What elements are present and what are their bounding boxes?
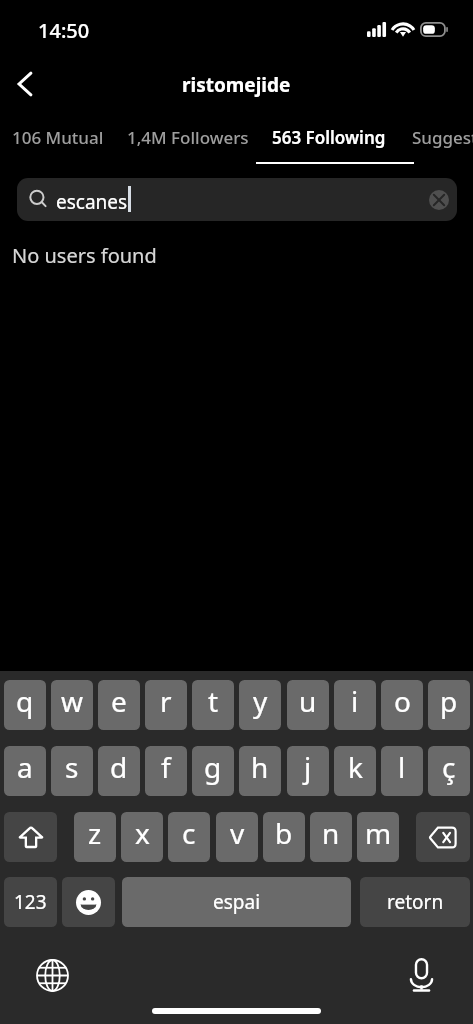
button[interactable]: k bbox=[334, 746, 376, 796]
button[interactable]: l bbox=[381, 746, 423, 796]
button[interactable]: Emoji bbox=[62, 877, 115, 927]
staticText: i bbox=[351, 682, 359, 720]
button[interactable]: m bbox=[357, 812, 399, 862]
staticText: r bbox=[160, 682, 172, 720]
button[interactable]: Return bbox=[360, 877, 470, 927]
staticText: n bbox=[322, 814, 340, 852]
button[interactable]: q bbox=[4, 680, 46, 730]
staticText: b bbox=[275, 814, 293, 852]
button[interactable]: x bbox=[121, 812, 163, 862]
button[interactable]: i bbox=[334, 680, 376, 730]
staticText: y bbox=[253, 682, 268, 720]
staticText: q bbox=[16, 682, 34, 720]
staticText: h bbox=[251, 748, 269, 786]
staticText: e bbox=[111, 682, 127, 720]
staticText: f bbox=[161, 748, 171, 786]
button[interactable]: a bbox=[4, 746, 46, 796]
staticText: s bbox=[65, 748, 79, 786]
staticText: escanes bbox=[56, 189, 128, 215]
button[interactable]: y bbox=[239, 680, 281, 730]
staticText: o bbox=[394, 682, 411, 720]
button[interactable]: Suggested bbox=[396, 118, 473, 166]
button[interactable]: n bbox=[310, 812, 352, 862]
staticText: 14:50 bbox=[38, 17, 90, 44]
staticText: ç bbox=[442, 748, 456, 786]
button[interactable]: Clear text bbox=[428, 189, 449, 210]
staticText: t bbox=[208, 682, 219, 720]
button[interactable]: Space bbox=[122, 877, 351, 927]
staticText: u bbox=[299, 682, 317, 720]
staticText: 106 Mutual bbox=[12, 126, 104, 149]
staticText: k bbox=[348, 748, 363, 786]
button[interactable]: e bbox=[98, 680, 140, 730]
staticText: x bbox=[135, 814, 150, 852]
staticText: j bbox=[304, 748, 312, 786]
button[interactable]: 563 Following bbox=[256, 118, 414, 166]
staticText: c bbox=[182, 814, 196, 852]
button[interactable]: w bbox=[51, 680, 93, 730]
button[interactable]: d bbox=[98, 746, 140, 796]
staticText: g bbox=[204, 748, 222, 786]
staticText: No users found bbox=[12, 242, 157, 269]
button[interactable]: v bbox=[216, 812, 258, 862]
staticText: a bbox=[17, 748, 33, 786]
staticText: l bbox=[398, 748, 406, 786]
button[interactable]: c bbox=[168, 812, 210, 862]
button[interactable]: h bbox=[239, 746, 281, 796]
button[interactable]: t bbox=[192, 680, 234, 730]
staticText: d bbox=[110, 748, 128, 786]
staticText: p bbox=[440, 682, 458, 720]
button[interactable]: escanes bbox=[17, 178, 457, 221]
button[interactable]: ç bbox=[428, 746, 470, 796]
button[interactable]: Shift bbox=[4, 812, 57, 862]
staticText: espai bbox=[213, 889, 261, 915]
button[interactable]: Dictation bbox=[399, 953, 443, 997]
button[interactable]: Change keyboard bbox=[30, 953, 74, 997]
staticText: 1,4M Followers bbox=[127, 126, 249, 149]
button[interactable]: z bbox=[74, 812, 116, 862]
staticText: 563 Following bbox=[272, 126, 386, 149]
staticText: w bbox=[61, 682, 84, 720]
staticText: Suggested bbox=[412, 126, 473, 149]
button[interactable]: Backspace bbox=[416, 812, 470, 862]
button[interactable]: g bbox=[192, 746, 234, 796]
button[interactable]: r bbox=[145, 680, 187, 730]
button[interactable]: j bbox=[287, 746, 329, 796]
button[interactable]: p bbox=[428, 680, 470, 730]
staticText: v bbox=[230, 814, 245, 852]
button[interactable]: b bbox=[263, 812, 305, 862]
button[interactable]: f bbox=[145, 746, 187, 796]
button[interactable]: s bbox=[51, 746, 93, 796]
staticText: m bbox=[365, 814, 392, 852]
button[interactable]: 1,4M Followers bbox=[111, 118, 273, 166]
staticText: ristomejide bbox=[182, 72, 291, 98]
button[interactable]: u bbox=[287, 680, 329, 730]
button[interactable]: o bbox=[381, 680, 423, 730]
staticText: z bbox=[88, 814, 102, 852]
staticText: 123 bbox=[14, 889, 47, 915]
button[interactable]: Numbers bbox=[4, 877, 57, 927]
button[interactable]: Back bbox=[1, 60, 49, 108]
button[interactable]: 106 Mutual bbox=[0, 118, 133, 166]
staticText: retorn bbox=[387, 889, 444, 915]
